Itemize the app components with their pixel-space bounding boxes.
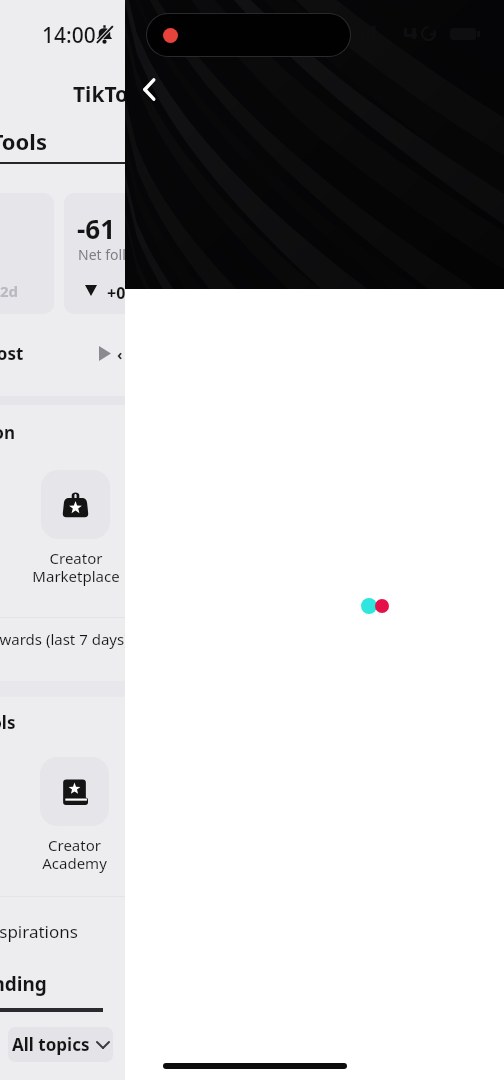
button[interactable]: 2d (0, 193, 54, 314)
staticText: ‹ (117, 344, 123, 364)
staticText: All topics (12, 1033, 90, 1056)
staticText: Rewards (last 7 days) (0, 629, 125, 649)
staticText: -61 (77, 211, 116, 246)
staticText: Creator Marketplace (32, 548, 120, 587)
button[interactable]: Back (127, 67, 171, 111)
staticText: +0 (107, 282, 125, 304)
staticText: 14:00 (42, 21, 96, 50)
staticText: 2d (0, 281, 19, 301)
staticText: Inspirations (0, 920, 78, 943)
staticText: Monetization (0, 421, 16, 444)
button[interactable]: Creator Marketplace (13, 470, 125, 587)
button[interactable]: -61 (64, 193, 125, 314)
staticText: Trending (0, 971, 47, 997)
button[interactable]: Creator Academy (12, 757, 125, 874)
staticText: Tools (0, 711, 16, 734)
staticText: Creator Academy (42, 835, 107, 874)
staticText: Creator Tools (0, 126, 47, 156)
staticText: Create a post (0, 342, 24, 365)
staticText: Net followers (78, 245, 125, 264)
button[interactable]: All topics (8, 1027, 113, 1062)
staticText: TikTok (73, 80, 125, 109)
